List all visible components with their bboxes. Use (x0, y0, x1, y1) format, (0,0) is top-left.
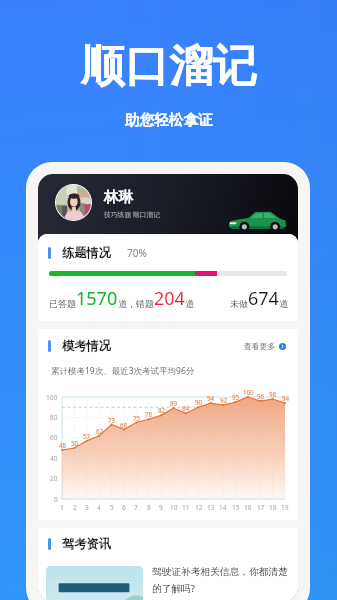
staticText: 90 (195, 398, 203, 406)
staticText: 林琳 (104, 188, 133, 206)
staticText: 练题情况 (62, 245, 111, 260)
button[interactable]: 驾驶证补考相关信息，你都清楚的了解吗? (46, 566, 291, 600)
staticText: 78 (145, 410, 153, 418)
staticText: 100 (46, 393, 58, 402)
staticText: 48 (59, 441, 67, 449)
staticText: 84 (182, 404, 190, 412)
staticText: 95 (232, 393, 240, 401)
staticText: 道 (185, 298, 194, 309)
staticText: 9 (159, 503, 163, 512)
staticText: 92 (220, 396, 228, 404)
staticText: 100 (243, 388, 254, 396)
staticText: 1 (60, 503, 64, 512)
staticText: 3 (85, 503, 89, 512)
staticText: 模考情况 (62, 338, 111, 353)
staticText: 17 (257, 503, 265, 512)
staticText: 11 (182, 503, 190, 512)
staticText: 13 (207, 503, 215, 512)
staticText: 顺口溜记 (81, 39, 257, 94)
staticText: 4 (97, 503, 101, 512)
staticText: 75 (133, 414, 141, 422)
staticText: 57 (83, 432, 91, 440)
staticText: 19 (281, 503, 289, 512)
staticText: 累计模考19次、最近3次考试平均96分 (51, 365, 195, 377)
staticText: 16 (244, 503, 252, 512)
button[interactable]: 查看更多 (242, 339, 288, 353)
staticText: 7 (134, 503, 138, 512)
staticText: 6 (122, 503, 126, 512)
staticText: 2 (73, 503, 77, 512)
staticText: 50 (71, 439, 79, 447)
staticText: 12 (195, 503, 203, 512)
staticText: 20 (50, 474, 58, 483)
staticText: 62 (96, 427, 104, 435)
staticText: 0 (54, 495, 58, 504)
staticText: 94 (207, 394, 215, 402)
staticText: 驾考资讯 (62, 536, 111, 551)
staticText: 18 (269, 503, 277, 512)
staticText: 40 (50, 454, 58, 463)
staticText: 89 (170, 399, 178, 407)
staticText: 驾驶证补考相关信息，你都清楚的了解吗? (152, 566, 291, 594)
staticText: 助您轻松拿证 (125, 111, 213, 129)
staticText: 技巧练题 顺口溜记 (104, 210, 161, 219)
staticText: 98 (269, 390, 277, 398)
staticText: 60 (50, 433, 58, 442)
staticText: 道 (279, 298, 288, 309)
staticText: 82 (158, 406, 166, 414)
staticText: 10 (170, 503, 178, 512)
staticText: 未做 (230, 298, 248, 309)
staticText: 15 (232, 503, 240, 512)
staticText: 204 (154, 286, 185, 311)
staticText: 70% (127, 246, 147, 260)
staticText: 73 (108, 416, 116, 424)
staticText: 错题 (136, 298, 154, 309)
staticText: 已答题 (49, 298, 76, 309)
staticText: 674 (248, 286, 279, 311)
staticText: 查看更多 (244, 341, 276, 351)
staticText: 96 (257, 392, 265, 400)
staticText: 14 (219, 503, 227, 512)
staticText: 5 (110, 503, 114, 512)
staticText: 94 (282, 394, 290, 402)
staticText: 道， (118, 298, 136, 309)
staticText: 80 (50, 413, 58, 422)
staticText: 1570 (76, 286, 118, 311)
staticText: 68 (120, 421, 128, 429)
staticText: 8 (147, 503, 151, 512)
